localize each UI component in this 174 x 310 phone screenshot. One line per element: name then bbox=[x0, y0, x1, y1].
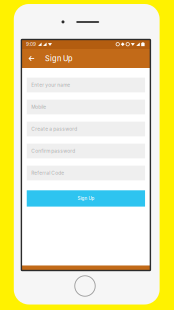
button[interactable]: Create a password bbox=[27, 122, 145, 136]
staticText: Referral Code bbox=[31, 170, 64, 176]
staticText: Mobile bbox=[31, 104, 46, 110]
staticText: Sign Up bbox=[45, 54, 73, 63]
staticText: Enter your name bbox=[31, 82, 70, 88]
button[interactable]: Sign Up bbox=[27, 190, 145, 207]
button[interactable]: Enter your name bbox=[27, 78, 145, 92]
button[interactable]: Back bbox=[25, 49, 39, 68]
staticText: Sign Up bbox=[77, 196, 94, 201]
staticText: Confirm password bbox=[31, 148, 75, 154]
button[interactable]: Confirm password bbox=[27, 144, 145, 158]
staticText: Create a password bbox=[31, 126, 77, 132]
staticText: 9:09 bbox=[26, 41, 36, 47]
button[interactable]: Mobile bbox=[27, 100, 145, 114]
button[interactable]: Referral Code bbox=[27, 166, 145, 180]
